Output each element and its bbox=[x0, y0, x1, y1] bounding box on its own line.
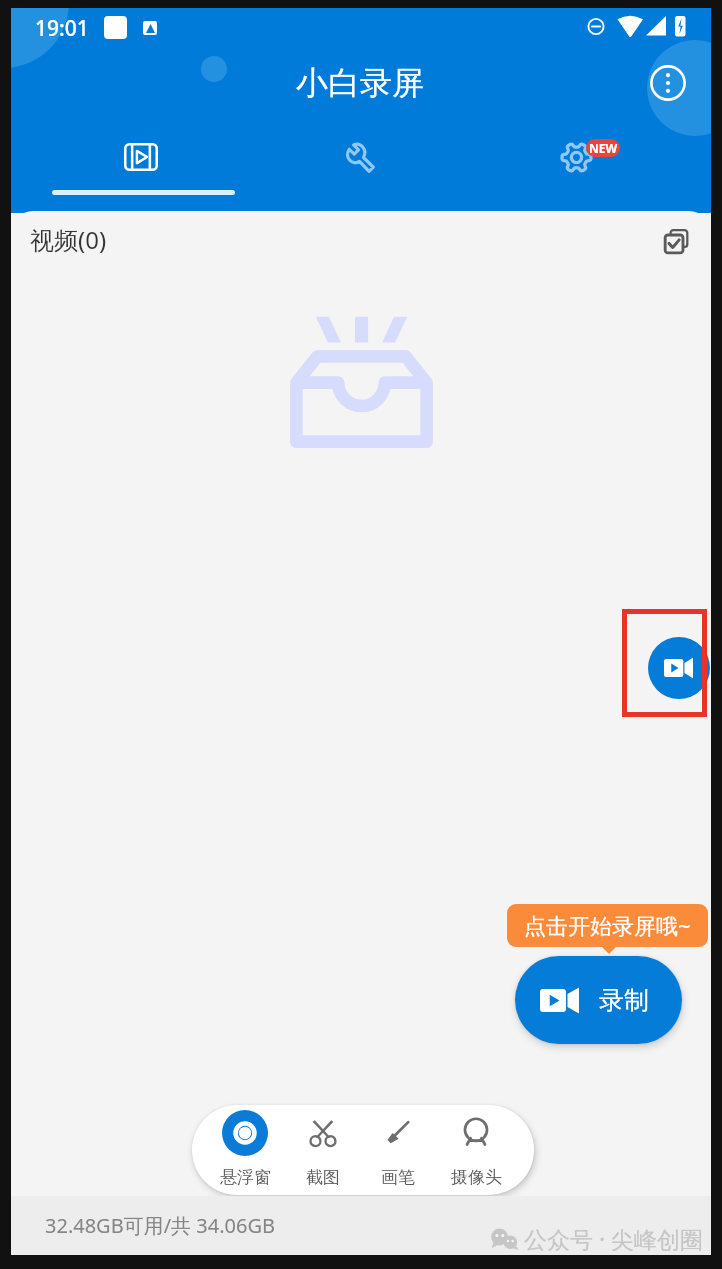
button[interactable]: 悬浮窗 bbox=[207, 1105, 283, 1195]
staticText: 录制 bbox=[599, 985, 649, 1016]
staticText: 小白录屏 bbox=[296, 63, 424, 103]
button[interactable]: 截图 bbox=[285, 1105, 361, 1195]
staticText: 视频(0) bbox=[30, 223, 107, 256]
staticText: 截图 bbox=[306, 1167, 340, 1188]
staticText: 32.48GB可用/共 34.06GB bbox=[45, 1212, 275, 1239]
staticText: 画笔 bbox=[381, 1167, 415, 1188]
staticText: 摄像头 bbox=[451, 1167, 502, 1188]
button[interactable]: Videos tab bbox=[25, 122, 257, 192]
button[interactable]: 摄像头 bbox=[438, 1105, 514, 1195]
staticText: 悬浮窗 bbox=[220, 1167, 271, 1188]
button[interactable]: More options bbox=[648, 63, 688, 103]
staticText: 19:01 bbox=[35, 14, 89, 43]
staticText: NEW bbox=[589, 140, 618, 156]
button[interactable]: Tools tab bbox=[243, 122, 475, 192]
button[interactable]: Settings tab bbox=[460, 122, 692, 192]
button[interactable]: 画笔 bbox=[360, 1105, 436, 1195]
staticText: 公众号 · 尖峰创圈 bbox=[524, 1223, 704, 1254]
staticText: 点击开始录屏哦~ bbox=[524, 910, 691, 940]
button[interactable]: 录制 bbox=[515, 956, 682, 1044]
button[interactable]: Select all bbox=[655, 220, 697, 262]
button[interactable]: Start recording bbox=[648, 637, 710, 699]
